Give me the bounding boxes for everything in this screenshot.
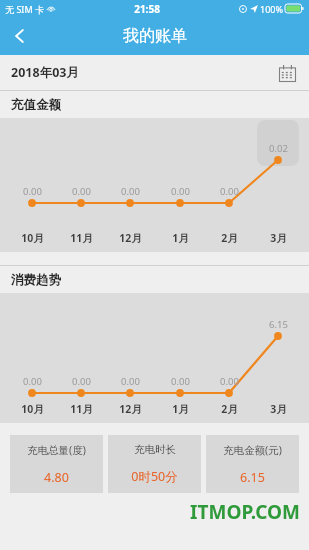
button[interactable]: 充电总量(度) xyxy=(10,435,103,493)
staticText: 0.00 xyxy=(72,185,91,198)
staticText: 12月 xyxy=(119,402,142,416)
staticText: 21:58 xyxy=(134,2,160,16)
staticText: 12月 xyxy=(119,231,142,245)
staticText: 2018年03月 xyxy=(11,64,79,81)
staticText: 消费趋势 xyxy=(11,272,61,288)
staticText: 0.00 xyxy=(171,185,190,198)
button[interactable]: 充电时长 xyxy=(108,435,201,493)
staticText: 0.00 xyxy=(72,375,91,388)
staticText: 10月 xyxy=(21,402,44,416)
staticText: 我的账单 xyxy=(123,26,187,46)
staticText: 充值金额 xyxy=(11,97,61,113)
staticText: 3月 xyxy=(270,231,287,245)
staticText: 2月 xyxy=(221,402,238,416)
staticText: 充电金额(元) xyxy=(223,443,282,457)
staticText: 1月 xyxy=(172,402,189,416)
staticText: 充电时长 xyxy=(134,443,176,456)
staticText: 0.00 xyxy=(23,185,42,198)
staticText: 2月 xyxy=(221,231,238,245)
staticText: 6.15 xyxy=(240,469,265,486)
staticText: 无 SIM 卡 xyxy=(5,3,44,15)
staticText: 10月 xyxy=(21,231,44,245)
staticText: 充电总量(度) xyxy=(27,443,86,457)
staticText: 11月 xyxy=(70,231,93,245)
staticText: ITMOP.COM xyxy=(190,499,300,525)
button[interactable]: Back xyxy=(0,17,40,55)
staticText: 3月 xyxy=(270,402,287,416)
staticText: 100% xyxy=(260,3,283,15)
staticText: 11月 xyxy=(70,402,93,416)
staticText: 0.00 xyxy=(220,375,239,388)
button[interactable]: Pick month xyxy=(274,60,300,86)
staticText: 0.00 xyxy=(23,375,42,388)
staticText: 0.00 xyxy=(121,375,140,388)
staticText: 0时50分 xyxy=(131,468,178,485)
staticText: 0.02 xyxy=(269,142,288,155)
staticText: 6.15 xyxy=(269,318,288,331)
staticText: 4.80 xyxy=(44,469,69,486)
button[interactable]: 充电金额(元) xyxy=(206,435,299,493)
staticText: 1月 xyxy=(172,231,189,245)
staticText: 0.00 xyxy=(220,185,239,198)
staticText: 0.00 xyxy=(171,375,190,388)
staticText: 0.00 xyxy=(121,185,140,198)
